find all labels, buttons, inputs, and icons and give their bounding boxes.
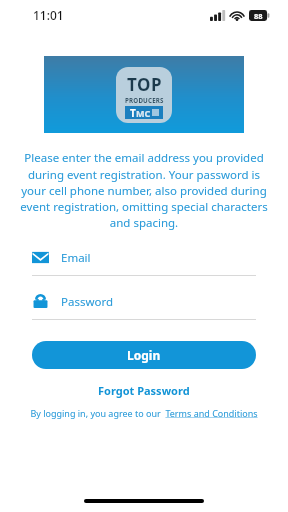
button[interactable]: Login [32,341,256,369]
staticText: 11:01 [33,7,64,23]
staticText: Password [61,294,114,310]
button[interactable]: Forgot Password [0,383,288,398]
staticText: PRODUCERS [125,96,164,104]
staticText: By logging in, you agree to our Terms an… [30,407,258,419]
staticText: Email [61,250,91,266]
staticText: T [130,106,136,119]
button[interactable]: Password [32,293,256,320]
staticText: Login [127,347,161,363]
other: Password [32,293,49,310]
other: Email [32,249,49,266]
staticText: 88 [254,11,263,21]
staticText: TOP [127,73,162,96]
staticText: Forgot Password [98,383,190,398]
button[interactable]: Email [32,249,256,276]
button[interactable]: By logging in, you agree to our Terms an… [12,407,276,419]
staticText: MC [136,107,151,119]
staticText: Please enter the email address you provi… [17,150,271,230]
